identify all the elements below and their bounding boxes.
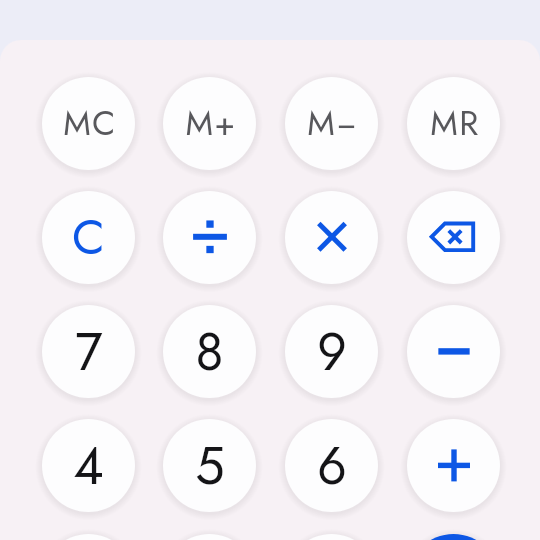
button[interactable]: Backspace: [407, 191, 500, 284]
button[interactable]: 6: [285, 419, 378, 512]
staticText: M−: [307, 99, 358, 148]
button[interactable]: 5: [163, 419, 256, 512]
button[interactable]: C: [42, 191, 135, 284]
button[interactable]: Minus: [407, 305, 500, 398]
button[interactable]: M−: [285, 77, 378, 170]
button[interactable]: 4: [42, 419, 135, 512]
button[interactable]: 3: [285, 534, 378, 540]
button[interactable]: MR: [407, 77, 500, 170]
staticText: 5: [195, 428, 225, 503]
button[interactable]: Multiply: [285, 191, 378, 284]
staticText: MC: [63, 99, 117, 148]
staticText: 9: [317, 314, 347, 389]
staticText: 7: [75, 314, 103, 389]
button[interactable]: M+: [163, 77, 256, 170]
staticText: 8: [195, 314, 224, 389]
button[interactable]: 7: [42, 305, 135, 398]
button[interactable]: 8: [163, 305, 256, 398]
button[interactable]: 9: [285, 305, 378, 398]
staticText: C: [72, 203, 105, 272]
button[interactable]: MC: [42, 77, 135, 170]
staticText: 6: [317, 428, 347, 503]
staticText: MR: [430, 99, 480, 148]
button[interactable]: Plus: [407, 419, 500, 512]
button[interactable]: 1: [42, 534, 135, 540]
button[interactable]: 2: [163, 534, 256, 540]
staticText: 4: [73, 428, 104, 503]
staticText: M+: [185, 99, 237, 148]
button[interactable]: Divide: [163, 191, 256, 284]
button[interactable]: Equals: [407, 534, 500, 540]
